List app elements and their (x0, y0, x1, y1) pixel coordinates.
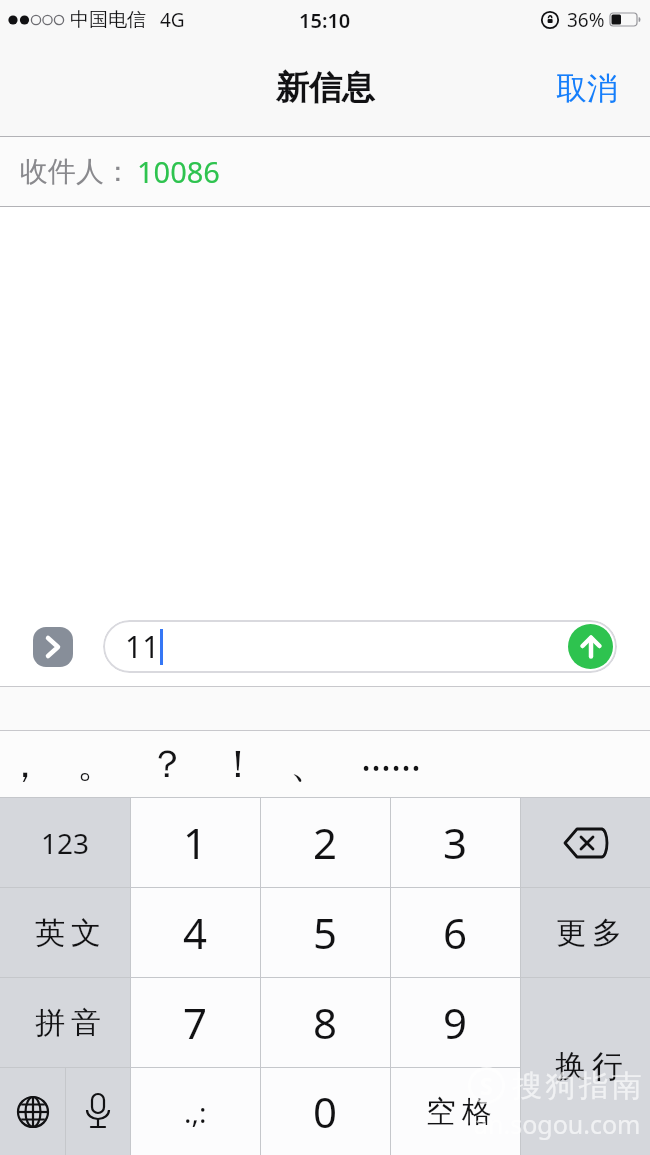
staticText: 0 (313, 1083, 338, 1140)
staticText: 3 (443, 814, 468, 871)
staticText: 、 (290, 740, 328, 788)
button[interactable]: 7 (131, 978, 260, 1067)
button[interactable]: 9 (391, 978, 520, 1067)
button[interactable]: 拼音 (0, 978, 130, 1067)
staticText: ！ (219, 740, 257, 788)
staticText: an.sogou.com (474, 1107, 641, 1141)
staticText: 4 (183, 904, 208, 961)
staticText: .,: (184, 1093, 207, 1131)
staticText: 2 (313, 814, 338, 871)
staticText: 36% (567, 7, 605, 33)
button[interactable]: 6 (391, 888, 520, 977)
staticText: 换行 (552, 1047, 626, 1086)
staticText: 123 (41, 824, 90, 862)
button[interactable]: 123 (0, 798, 130, 887)
button[interactable]: 2 (261, 798, 390, 887)
staticText: 10086 (137, 152, 220, 191)
staticText: 9 (443, 994, 468, 1051)
button[interactable]: 3 (391, 798, 520, 887)
button[interactable]: 更多 (521, 888, 650, 977)
staticText: 6 (443, 904, 468, 961)
staticText: 7 (183, 994, 208, 1051)
staticText: 1 (183, 814, 208, 871)
staticText: 8 (313, 994, 338, 1051)
button[interactable]: 1 (131, 798, 260, 887)
staticText: S (480, 1070, 493, 1101)
button[interactable]: 英文 (0, 888, 130, 977)
staticText: 中国电信 (70, 8, 146, 32)
staticText: 4G (160, 7, 185, 33)
staticText: 更多 (553, 914, 625, 952)
button[interactable] (568, 624, 613, 669)
button[interactable]: 4 (131, 888, 260, 977)
button[interactable]: 8 (261, 978, 390, 1067)
staticText: …… (361, 730, 422, 782)
button[interactable]: .,: (131, 1068, 260, 1155)
button[interactable]: 。 (61, 731, 131, 797)
button[interactable] (33, 627, 73, 667)
staticText: ？ (148, 740, 186, 788)
staticText: 英文 (32, 914, 104, 952)
button[interactable] (66, 1068, 130, 1155)
button[interactable]: 取消 (556, 69, 618, 108)
button[interactable]: 换行 (521, 978, 650, 1155)
staticText: 空格 (423, 1093, 495, 1131)
button[interactable]: ！ (203, 731, 273, 797)
staticText: 搜狗指南 (511, 1067, 643, 1105)
button[interactable]: ， (0, 731, 60, 797)
staticText: 15:10 (299, 7, 351, 34)
button[interactable]: 空格 (391, 1068, 520, 1155)
button[interactable]: 11 (103, 620, 617, 673)
staticText: ， (6, 740, 44, 788)
staticText: 拼音 (32, 1004, 104, 1042)
button[interactable]: ？ (132, 731, 202, 797)
staticText: 取消 (556, 69, 618, 108)
button[interactable]: 0 (261, 1068, 390, 1155)
button[interactable] (521, 798, 650, 887)
button[interactable]: 收件人： (0, 137, 650, 206)
staticText: 新信息 (276, 67, 375, 109)
button[interactable]: 、 (274, 731, 344, 797)
button[interactable]: …… (356, 723, 426, 789)
staticText: 11 (125, 626, 160, 667)
staticText: 5 (313, 904, 338, 961)
button[interactable] (0, 1068, 65, 1155)
staticText: 。 (77, 740, 115, 788)
staticText: 收件人： (20, 154, 132, 189)
button[interactable]: 5 (261, 888, 390, 977)
